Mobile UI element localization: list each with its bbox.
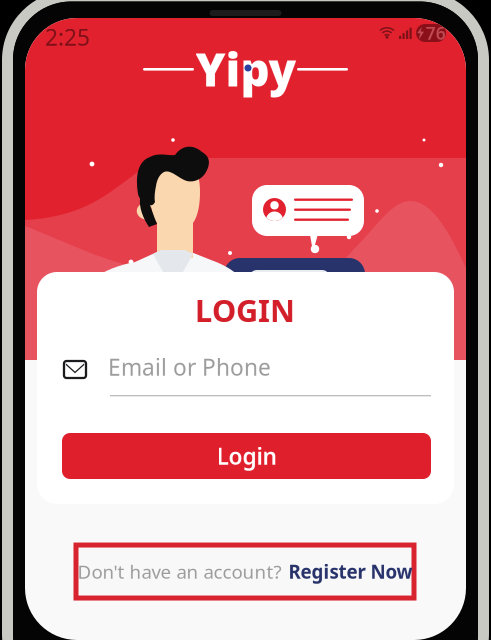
staticText: 76 bbox=[426, 21, 446, 44]
staticText: Email or Phone bbox=[108, 352, 271, 382]
staticText: Yipy bbox=[195, 39, 296, 99]
staticText: Don't have an account? bbox=[77, 559, 281, 584]
staticText: 2:25 bbox=[45, 22, 90, 52]
staticText: LOGIN bbox=[195, 290, 295, 330]
button[interactable]: Don't have an account? bbox=[25, 18, 466, 640]
staticText: Register Now bbox=[288, 559, 412, 584]
button[interactable]: Login bbox=[25, 18, 466, 640]
staticText: Login bbox=[216, 441, 276, 471]
